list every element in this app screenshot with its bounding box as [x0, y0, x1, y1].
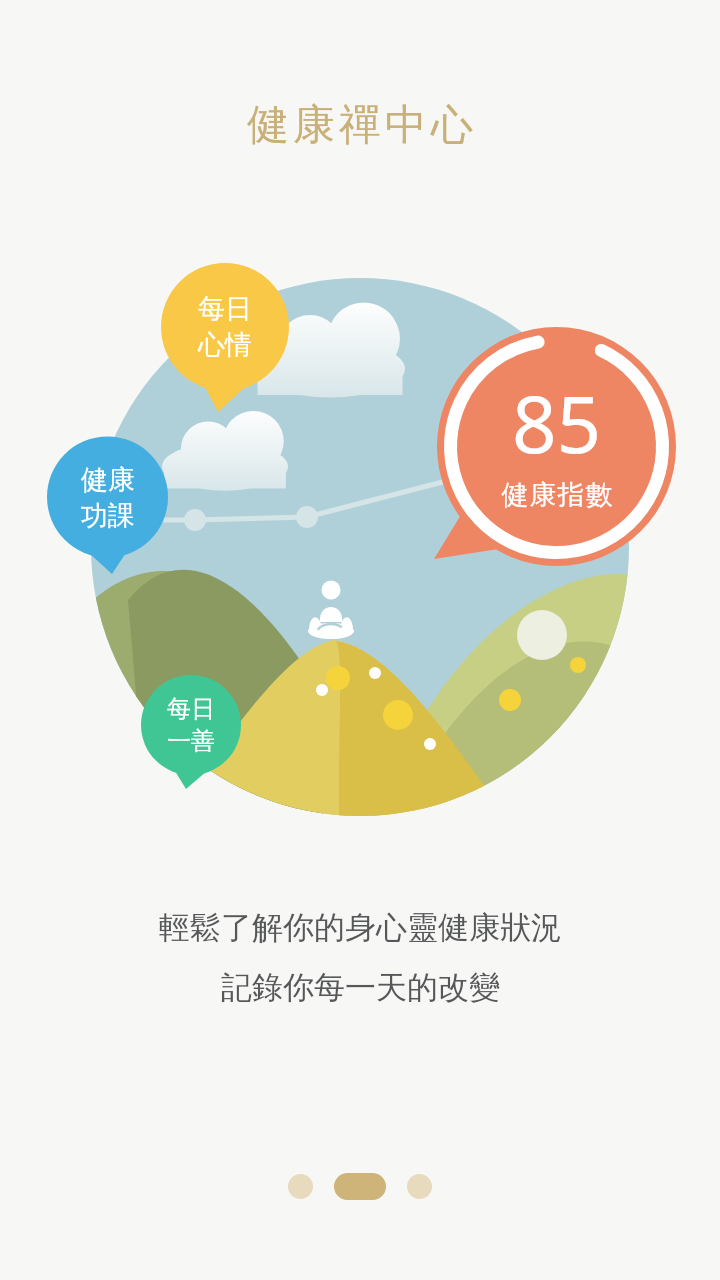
staticText: 記錄你每一天的改變: [221, 968, 500, 1007]
button[interactable]: Page 1: [288, 1174, 313, 1199]
staticText: 健康禪中心: [245, 99, 475, 152]
button[interactable]: 每日心情: [161, 263, 289, 391]
staticText: 每日 心情: [198, 292, 252, 362]
staticText: 健康 功課: [81, 463, 135, 533]
staticText: 每日 一善: [167, 694, 215, 756]
staticText: 輕鬆了解你的身心靈健康狀況: [159, 908, 562, 947]
button[interactable]: 健康指數 85: [437, 327, 676, 566]
button[interactable]: Page 2, current page: [334, 1173, 386, 1200]
button[interactable]: 健康功課: [47, 437, 168, 558]
staticText: 健康指數: [501, 478, 613, 512]
button[interactable]: 每日一善: [141, 675, 241, 775]
staticText: 85: [512, 370, 602, 476]
button[interactable]: Page 3: [407, 1174, 432, 1199]
